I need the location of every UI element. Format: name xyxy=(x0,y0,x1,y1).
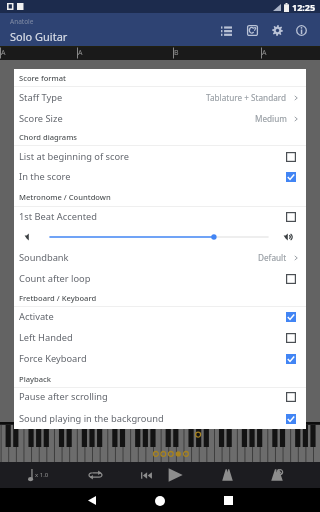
staticText: Playback xyxy=(19,374,52,384)
staticText: Left Handed xyxy=(19,331,73,344)
button[interactable]: Chord diagram xyxy=(240,18,264,42)
staticText: A xyxy=(78,48,83,58)
button[interactable]: Mute metronome xyxy=(264,462,290,488)
button[interactable]: Rewind xyxy=(133,462,159,488)
button[interactable]: Metronome xyxy=(214,462,240,488)
button[interactable]: Back xyxy=(79,488,105,512)
button[interactable]: Play xyxy=(162,462,188,488)
button[interactable]: Track list xyxy=(214,18,238,42)
staticText: B xyxy=(174,48,179,58)
staticText: 12:25 xyxy=(292,1,316,13)
staticText: Fretboard / Keyboard xyxy=(19,293,97,303)
button[interactable]: Pause after scrolling xyxy=(14,386,306,407)
staticText: Anatole xyxy=(10,17,34,26)
button[interactable]: Count after loop xyxy=(14,268,306,289)
staticText: x 1.0 xyxy=(35,471,49,479)
staticText: List at beginning of score xyxy=(19,150,130,163)
staticText: Force Keyboard xyxy=(19,352,87,365)
button[interactable]: Settings xyxy=(265,18,289,42)
button[interactable]: Volume up xyxy=(278,227,298,247)
button[interactable]: x 1.0 xyxy=(24,462,53,488)
button[interactable]: Sound playing in the background xyxy=(14,408,306,429)
staticText: Medium xyxy=(255,113,287,124)
staticText: In the score xyxy=(19,170,71,183)
button[interactable]: Loop xyxy=(82,462,108,488)
button[interactable]: Info xyxy=(289,18,313,42)
staticText: Soundbank xyxy=(19,251,69,264)
button[interactable]: Activate xyxy=(14,306,306,327)
staticText: A xyxy=(262,48,267,58)
staticText: Staff Type xyxy=(19,91,63,104)
button[interactable]: Recents xyxy=(215,488,241,512)
staticText: Solo Guitar xyxy=(10,29,68,44)
staticText: 1st Beat Accented xyxy=(19,210,97,223)
staticText: Score Size xyxy=(19,112,63,125)
button[interactable]: Force Keyboard xyxy=(14,348,306,369)
staticText: Sound playing in the background xyxy=(19,412,164,425)
button[interactable]: Metronome volume xyxy=(48,231,270,243)
button[interactable]: Soundbank xyxy=(14,247,306,268)
staticText: Score format xyxy=(19,73,66,83)
button[interactable]: Score Size xyxy=(14,108,306,129)
staticText: Tablature + Standard xyxy=(206,92,287,103)
staticText: A xyxy=(1,48,6,58)
staticText: Default xyxy=(258,252,287,263)
button[interactable]: In the score xyxy=(14,166,306,187)
button[interactable]: Left Handed xyxy=(14,327,306,348)
staticText: Chord diagrams xyxy=(19,132,78,142)
staticText: Pause after scrolling xyxy=(19,390,108,403)
button[interactable]: Staff Type xyxy=(14,87,306,108)
staticText: Activate xyxy=(19,310,54,323)
button[interactable]: 1st Beat Accented xyxy=(14,206,306,227)
button[interactable]: Volume down xyxy=(19,227,39,247)
button[interactable]: List at beginning of score xyxy=(14,146,306,167)
staticText: Count after loop xyxy=(19,272,91,285)
staticText: Metronome / Countdown xyxy=(19,192,111,202)
button[interactable]: Home xyxy=(147,488,173,512)
